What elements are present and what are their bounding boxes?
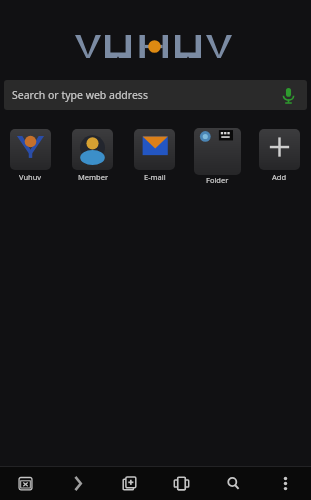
button[interactable] (72, 129, 113, 170)
button[interactable] (134, 129, 175, 170)
staticText: Member (78, 172, 108, 182)
button[interactable]: Search or type web address (4, 80, 307, 110)
staticText: Search or type web address (12, 88, 148, 102)
button[interactable]: Stop (0, 467, 51, 500)
button[interactable] (259, 129, 300, 170)
staticText: Vuhuv (19, 172, 42, 182)
staticText: Add (272, 172, 287, 182)
other: Voice search (281, 87, 296, 104)
staticText: Folder (206, 175, 229, 185)
button[interactable] (194, 128, 241, 175)
button[interactable]: New tab (103, 467, 155, 500)
button[interactable]: Tabs (155, 467, 207, 500)
button[interactable]: More options (259, 467, 311, 500)
button[interactable] (10, 129, 51, 170)
button[interactable]: Forward (51, 467, 103, 500)
staticText: E-mail (144, 172, 166, 182)
button[interactable]: Search (207, 467, 259, 500)
